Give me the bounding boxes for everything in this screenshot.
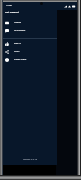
staticText: Contact xyxy=(14,21,21,24)
button[interactable]: Rate Us xyxy=(3,40,57,48)
button[interactable]: Send Report xyxy=(3,27,57,35)
staticText: 12:30 xyxy=(6,4,12,7)
button[interactable]: Share xyxy=(3,48,57,56)
staticText: Version 4.0.18 xyxy=(23,158,37,161)
staticText: Rate Us xyxy=(14,42,21,45)
staticText: Get Support xyxy=(5,11,19,14)
staticText: Privacy Policy xyxy=(14,58,26,61)
button[interactable]: Privacy Policy xyxy=(3,56,57,64)
staticText: Share xyxy=(14,50,19,53)
button[interactable]: Contact xyxy=(3,19,57,27)
staticText: Send Report xyxy=(14,29,25,32)
